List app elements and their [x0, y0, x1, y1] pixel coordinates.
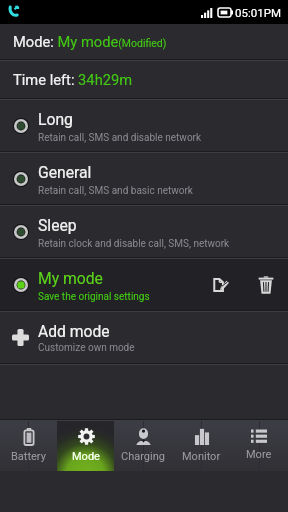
button[interactable]: Edit mode: [198, 259, 244, 310]
button[interactable]: Mode: [57, 421, 114, 471]
staticText: Retain call, SMS and disable network: [38, 132, 202, 144]
staticText: Charging: [121, 450, 165, 463]
staticText: Retain clock and disable call, SMS, netw…: [38, 238, 230, 250]
button[interactable]: Add mode: [0, 312, 288, 363]
staticText: My mode: [38, 269, 103, 287]
staticText: 05:01PM: [235, 6, 281, 19]
button[interactable]: General: [0, 153, 288, 204]
staticText: General: [38, 163, 92, 181]
button[interactable]: Long: [0, 100, 288, 151]
staticText: Time left: 34h29m: [13, 71, 133, 88]
staticText: Long: [38, 110, 73, 128]
button[interactable]: Delete mode: [244, 259, 288, 310]
button[interactable]: More: [230, 421, 288, 471]
staticText: Retain call, SMS and basic network: [38, 185, 193, 197]
button[interactable]: Battery: [0, 421, 57, 471]
button[interactable]: Monitor: [172, 421, 230, 471]
staticText: Add mode: [38, 322, 110, 340]
button[interactable]: Charging: [114, 421, 172, 471]
staticText: More: [246, 448, 272, 461]
button[interactable]: Sleep: [0, 206, 288, 257]
staticText: Monitor: [182, 450, 221, 463]
staticText: Customize own mode: [38, 342, 135, 354]
staticText: Sleep: [38, 216, 77, 234]
button[interactable]: My mode: [0, 259, 288, 310]
staticText: Battery: [11, 450, 46, 463]
staticText: Mode: My mode(Modified): [13, 33, 167, 50]
staticText: Save the original settings: [38, 291, 150, 303]
staticText: Mode: [72, 450, 100, 463]
